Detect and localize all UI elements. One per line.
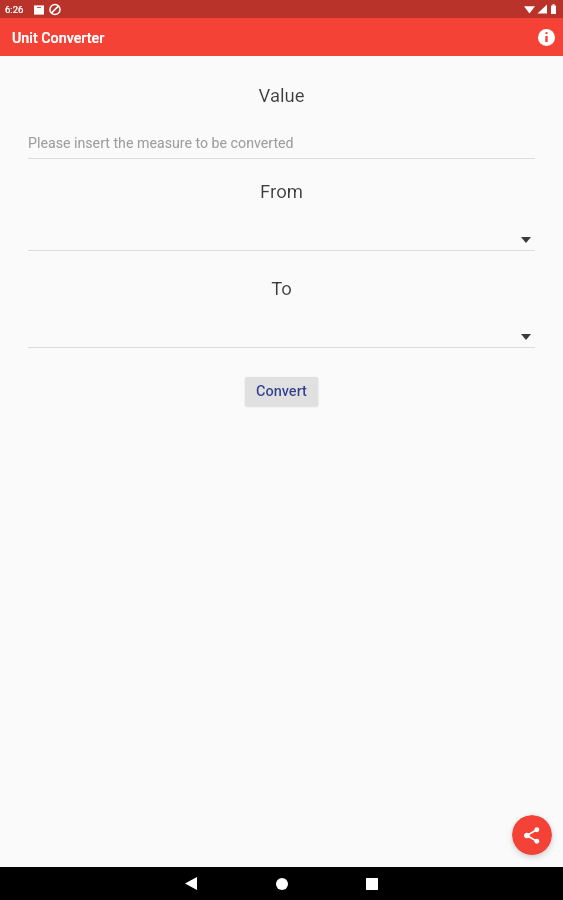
staticText: Please insert the measure to be converte… [28, 135, 294, 152]
button[interactable]: Select unit [28, 321, 535, 347]
button[interactable]: Please insert the measure to be converte… [28, 132, 535, 158]
button[interactable]: Convert [245, 377, 318, 406]
button[interactable]: Select unit [28, 224, 535, 250]
button[interactable]: Recents [351, 867, 393, 900]
button[interactable]: Back [170, 867, 212, 900]
staticText: 6:26 [5, 4, 24, 15]
staticText: Convert [256, 383, 307, 400]
button[interactable]: Share [512, 815, 552, 855]
staticText: Value [0, 85, 563, 107]
button[interactable]: About [531, 22, 561, 52]
button[interactable]: Home [261, 867, 303, 900]
staticText: To [0, 278, 563, 300]
staticText: Unit Converter [12, 30, 105, 47]
staticText: From [0, 181, 563, 203]
